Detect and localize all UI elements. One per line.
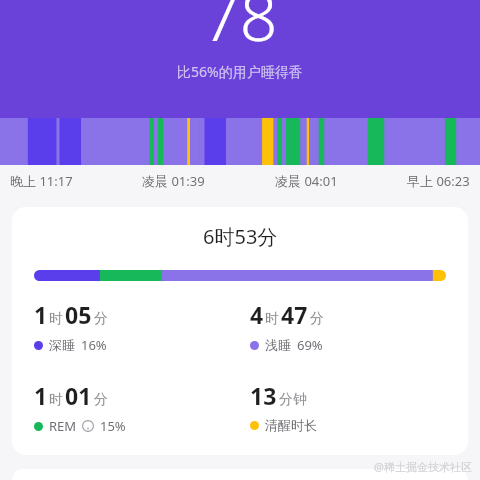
staticText: 晚上 11:17 bbox=[10, 172, 73, 190]
staticText: 分 bbox=[310, 310, 324, 328]
button[interactable]: What is REM bbox=[82, 420, 94, 432]
staticText: 凌晨 04:01 bbox=[275, 172, 338, 190]
staticText: 69% bbox=[297, 336, 323, 354]
staticText: 时 bbox=[49, 310, 63, 328]
button[interactable] bbox=[12, 469, 468, 480]
staticText: REM bbox=[49, 417, 77, 435]
staticText: 13 bbox=[250, 380, 277, 411]
staticText: 分 bbox=[94, 310, 108, 328]
button[interactable]: 6时53分 bbox=[12, 207, 468, 455]
staticText: 16% bbox=[81, 336, 107, 354]
staticText: 比56%的用户睡得香 bbox=[177, 62, 303, 81]
staticText: 1 bbox=[34, 299, 48, 330]
staticText: 浅睡 bbox=[265, 337, 291, 353]
staticText: 4 bbox=[250, 299, 264, 330]
button[interactable]: 13 bbox=[250, 380, 317, 433]
staticText: 47 bbox=[281, 299, 308, 330]
staticText: 1 bbox=[34, 380, 48, 411]
staticText: 清醒时长 bbox=[265, 417, 317, 433]
button[interactable]: 1 bbox=[34, 299, 108, 354]
staticText: 15% bbox=[100, 417, 126, 435]
staticText: 78 bbox=[202, 0, 278, 60]
staticText: 05 bbox=[65, 299, 92, 330]
button[interactable] bbox=[0, 118, 480, 165]
button[interactable]: 4 bbox=[250, 299, 324, 354]
staticText: 分钟 bbox=[279, 391, 307, 409]
button[interactable]: 1 bbox=[34, 380, 126, 435]
staticText: 凌晨 01:39 bbox=[142, 172, 205, 190]
staticText: 深睡 bbox=[49, 337, 75, 353]
staticText: 01 bbox=[65, 380, 92, 411]
staticText: 早上 06:23 bbox=[407, 172, 470, 190]
staticText: 时 bbox=[265, 310, 279, 328]
staticText: @稀土掘金技术社区 bbox=[374, 459, 472, 474]
staticText: 分 bbox=[94, 391, 108, 409]
staticText: 6时53分 bbox=[203, 223, 278, 250]
staticText: 时 bbox=[49, 391, 63, 409]
